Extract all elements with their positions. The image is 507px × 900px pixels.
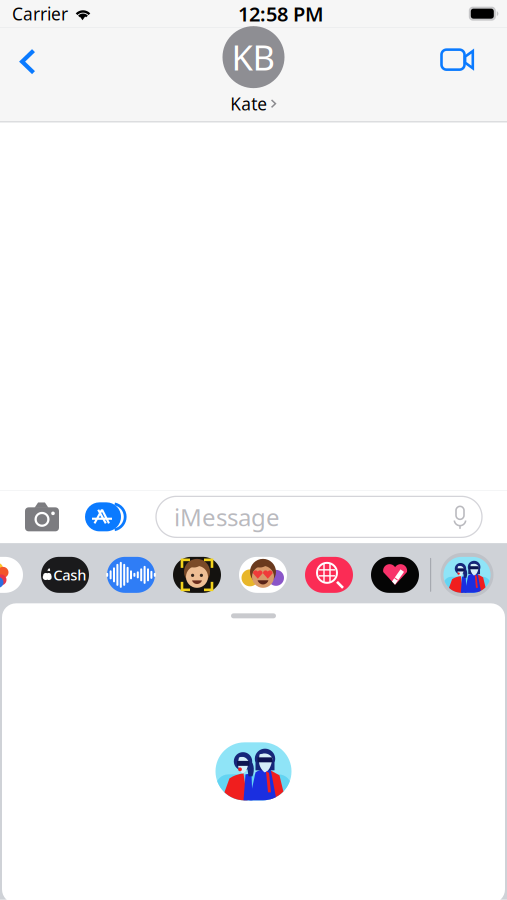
staticText: 12:58 PM xyxy=(238,0,324,27)
button[interactable]: Music xyxy=(367,550,423,600)
staticText: KB xyxy=(231,34,275,80)
button[interactable]: Camera xyxy=(19,493,65,541)
button[interactable]: Stickers xyxy=(235,550,291,600)
staticText: Kate xyxy=(230,92,267,115)
staticText: iMessage xyxy=(174,501,280,533)
button[interactable]: Audio xyxy=(103,550,159,600)
staticText: Cash xyxy=(53,565,86,585)
button[interactable]: Apps xyxy=(79,493,127,541)
button[interactable]: Photos xyxy=(0,550,27,600)
button[interactable]: iMessage xyxy=(156,496,482,537)
button[interactable]: Back xyxy=(5,36,51,88)
staticText: Carrier xyxy=(12,2,68,25)
button[interactable]: Selected app xyxy=(438,550,496,600)
button[interactable]: FaceTime xyxy=(430,34,476,86)
button[interactable]: Memoji xyxy=(169,550,225,600)
button[interactable]: Images xyxy=(301,550,357,600)
button[interactable]: Apple Cash xyxy=(37,550,93,600)
